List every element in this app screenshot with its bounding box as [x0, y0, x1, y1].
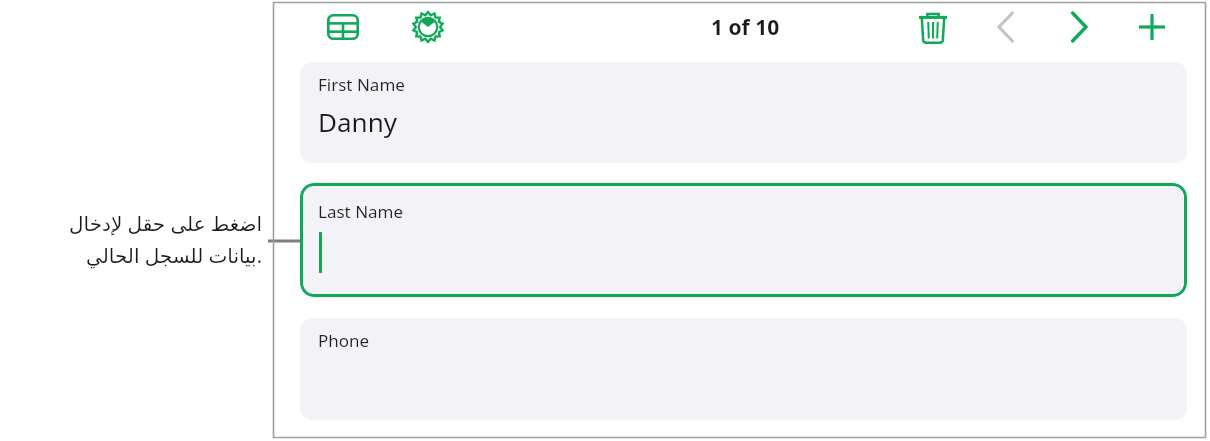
button[interactable]: Next record [1058, 6, 1100, 48]
button[interactable]: Table [322, 8, 364, 46]
button[interactable]: Settings [407, 6, 449, 48]
button[interactable]: Add record [1131, 6, 1173, 48]
staticText: Phone [318, 329, 370, 352]
button[interactable]: Last Name [300, 183, 1187, 297]
staticText: First Name [318, 73, 405, 96]
button[interactable]: Phone [300, 318, 1187, 420]
button[interactable]: Delete [912, 6, 954, 48]
staticText: اضغط على حقل لإدخال بيانات للسجل الحالي. [0, 210, 262, 290]
staticText: Danny [318, 104, 397, 139]
button[interactable]: First Name [300, 62, 1187, 163]
button[interactable]: Previous record [985, 6, 1027, 48]
staticText: Last Name [318, 200, 404, 223]
staticText: 1 of 10 [711, 13, 780, 42]
